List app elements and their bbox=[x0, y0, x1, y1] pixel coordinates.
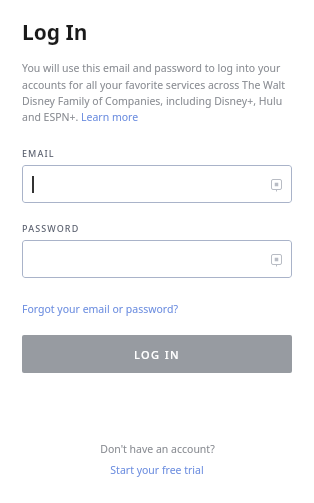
button[interactable]: LOG IN bbox=[22, 335, 292, 373]
staticText: Don't have an account? bbox=[100, 442, 215, 456]
staticText: EMAIL bbox=[22, 147, 55, 159]
staticText: Start your free trial bbox=[110, 463, 204, 477]
button[interactable] bbox=[22, 240, 292, 278]
staticText: Log In bbox=[22, 18, 88, 47]
staticText: PASSWORD bbox=[22, 222, 80, 234]
staticText: Forgot your email or password? bbox=[22, 302, 178, 316]
button[interactable]: Forgot your email or password? bbox=[22, 302, 178, 316]
staticText: You will use this email and password to … bbox=[22, 61, 292, 124]
staticText: LOG IN bbox=[134, 347, 180, 362]
button[interactable] bbox=[22, 165, 292, 203]
button[interactable]: Start your free trial bbox=[110, 463, 204, 477]
